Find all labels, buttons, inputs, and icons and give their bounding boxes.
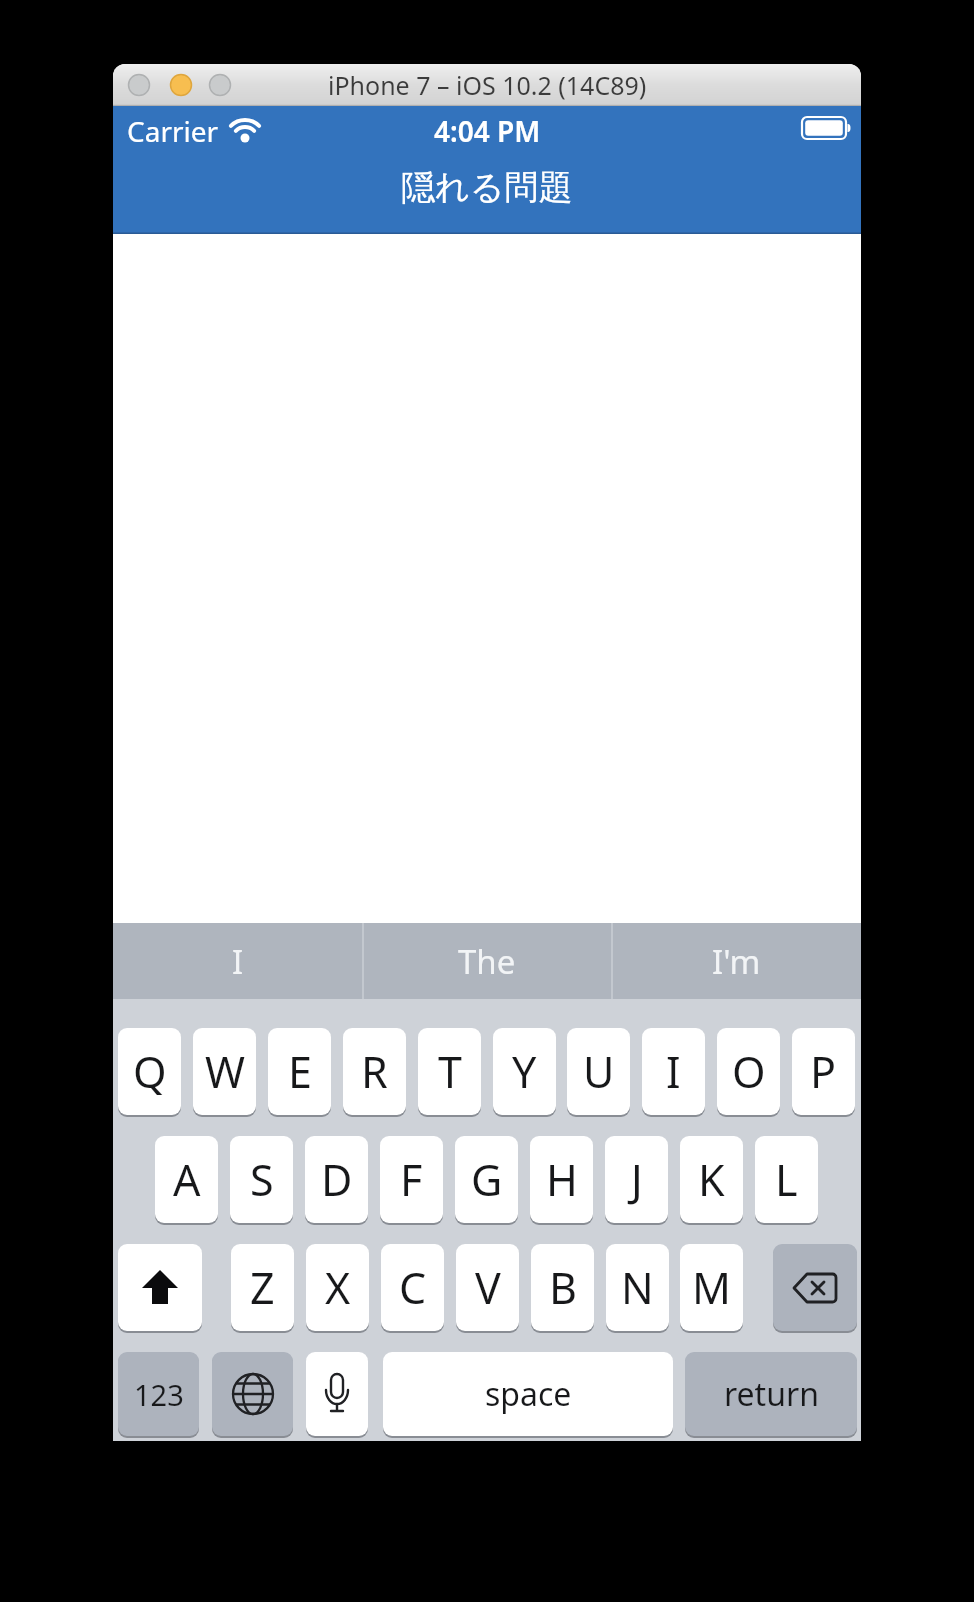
button[interactable]	[306, 1352, 368, 1436]
button[interactable]: A	[155, 1136, 218, 1223]
button[interactable]: P	[792, 1028, 855, 1115]
staticText: A	[173, 1150, 201, 1209]
button[interactable]: R	[343, 1028, 406, 1115]
button[interactable]: W	[193, 1028, 256, 1115]
button[interactable]	[773, 1244, 857, 1331]
button[interactable]: J	[605, 1136, 668, 1223]
button[interactable]: return	[685, 1352, 857, 1436]
staticText: L	[775, 1150, 798, 1209]
staticText: Carrier	[127, 112, 219, 150]
staticText: 隠れる問題	[401, 166, 573, 209]
staticText: E	[288, 1042, 312, 1101]
staticText: V	[475, 1258, 501, 1317]
button[interactable]: F	[380, 1136, 443, 1223]
button[interactable]: G	[455, 1136, 518, 1223]
staticText: 4:04 PM	[434, 112, 541, 150]
staticText: N	[621, 1258, 654, 1317]
button[interactable]: Q	[118, 1028, 181, 1115]
staticText: The	[458, 939, 516, 984]
staticText: D	[321, 1150, 353, 1209]
button[interactable]: 123	[118, 1352, 199, 1436]
button[interactable]: H	[530, 1136, 593, 1223]
staticText: space	[485, 1372, 572, 1416]
button[interactable]: N	[606, 1244, 669, 1331]
button[interactable]	[212, 1352, 293, 1436]
button[interactable]: X	[306, 1244, 369, 1331]
staticText: 123	[134, 1375, 184, 1414]
staticText: X	[325, 1258, 351, 1317]
staticText: T	[438, 1042, 462, 1101]
button[interactable]: Z	[231, 1244, 294, 1331]
staticText: G	[471, 1150, 503, 1209]
staticText: W	[205, 1042, 245, 1101]
staticText: J	[631, 1150, 643, 1209]
button[interactable]: T	[418, 1028, 481, 1115]
staticText: U	[583, 1042, 615, 1101]
staticText: I	[666, 1042, 681, 1101]
button[interactable]: Carrier	[113, 106, 861, 234]
button[interactable]: D	[305, 1136, 368, 1223]
button[interactable]: I'm	[611, 923, 861, 999]
button[interactable]: M	[680, 1244, 743, 1331]
staticText: C	[399, 1258, 427, 1317]
staticText: H	[546, 1150, 578, 1209]
button[interactable]: L	[755, 1136, 818, 1223]
staticText: return	[724, 1372, 819, 1416]
staticText: B	[549, 1258, 577, 1317]
staticText: iPhone 7 – iOS 10.2 (14C89)	[328, 68, 647, 102]
button[interactable]: E	[268, 1028, 331, 1115]
button[interactable]: K	[680, 1136, 743, 1223]
button[interactable]: I	[642, 1028, 705, 1115]
staticText: S	[250, 1150, 274, 1209]
staticText: O	[732, 1042, 766, 1101]
button[interactable]: C	[381, 1244, 444, 1331]
staticText: K	[698, 1150, 725, 1209]
staticText: P	[810, 1042, 837, 1101]
staticText: M	[692, 1258, 732, 1317]
button[interactable]	[118, 1244, 202, 1331]
staticText: R	[361, 1042, 388, 1101]
button[interactable]: The	[362, 923, 611, 999]
staticText: Z	[250, 1258, 275, 1317]
button[interactable]: V	[456, 1244, 519, 1331]
button[interactable]: space	[383, 1352, 673, 1436]
staticText: Y	[512, 1042, 537, 1101]
button[interactable]: I	[113, 923, 362, 999]
button[interactable]: B	[531, 1244, 594, 1331]
staticText: I'm	[712, 939, 761, 984]
staticText: F	[400, 1150, 423, 1209]
button[interactable]: S	[230, 1136, 293, 1223]
button[interactable]: U	[567, 1028, 630, 1115]
staticText: Q	[133, 1042, 167, 1101]
button[interactable]: O	[717, 1028, 780, 1115]
staticText: I	[232, 939, 244, 984]
button[interactable]: Y	[493, 1028, 556, 1115]
